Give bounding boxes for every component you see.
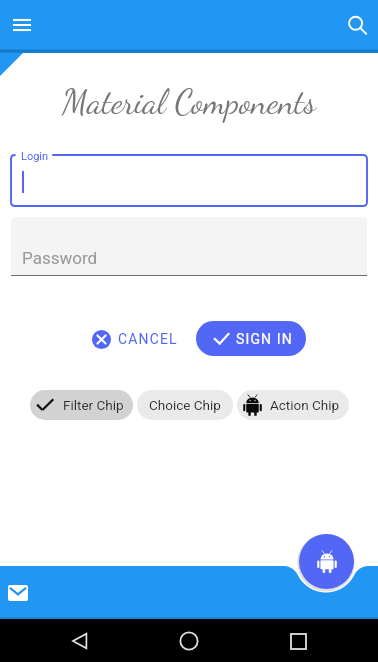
staticText: CANCEL bbox=[118, 331, 178, 347]
staticText: Filter Chip bbox=[63, 397, 124, 413]
button[interactable]: Recents bbox=[283, 626, 313, 656]
staticText: SIGN IN bbox=[236, 331, 293, 347]
button[interactable]: Menu bbox=[3, 6, 41, 44]
staticText: Material Components bbox=[62, 82, 316, 123]
button[interactable]: Android action bbox=[299, 534, 354, 589]
staticText: Action Chip bbox=[270, 397, 340, 413]
button[interactable]: Home bbox=[174, 626, 204, 656]
button[interactable] bbox=[11, 217, 367, 275]
button[interactable]: Email bbox=[0, 575, 35, 610]
staticText: Choice Chip bbox=[149, 397, 221, 413]
staticText: Login bbox=[21, 150, 49, 163]
button[interactable]: Back bbox=[65, 626, 95, 656]
button[interactable]: Search bbox=[338, 6, 376, 44]
button[interactable]: CANCEL bbox=[84, 321, 186, 357]
button[interactable]: Action Chip bbox=[237, 390, 349, 420]
button[interactable]: Choice Chip bbox=[137, 390, 233, 420]
button[interactable]: Filter Chip bbox=[30, 390, 133, 420]
button[interactable]: SIGN IN bbox=[196, 321, 306, 356]
staticText: Password bbox=[22, 248, 98, 268]
